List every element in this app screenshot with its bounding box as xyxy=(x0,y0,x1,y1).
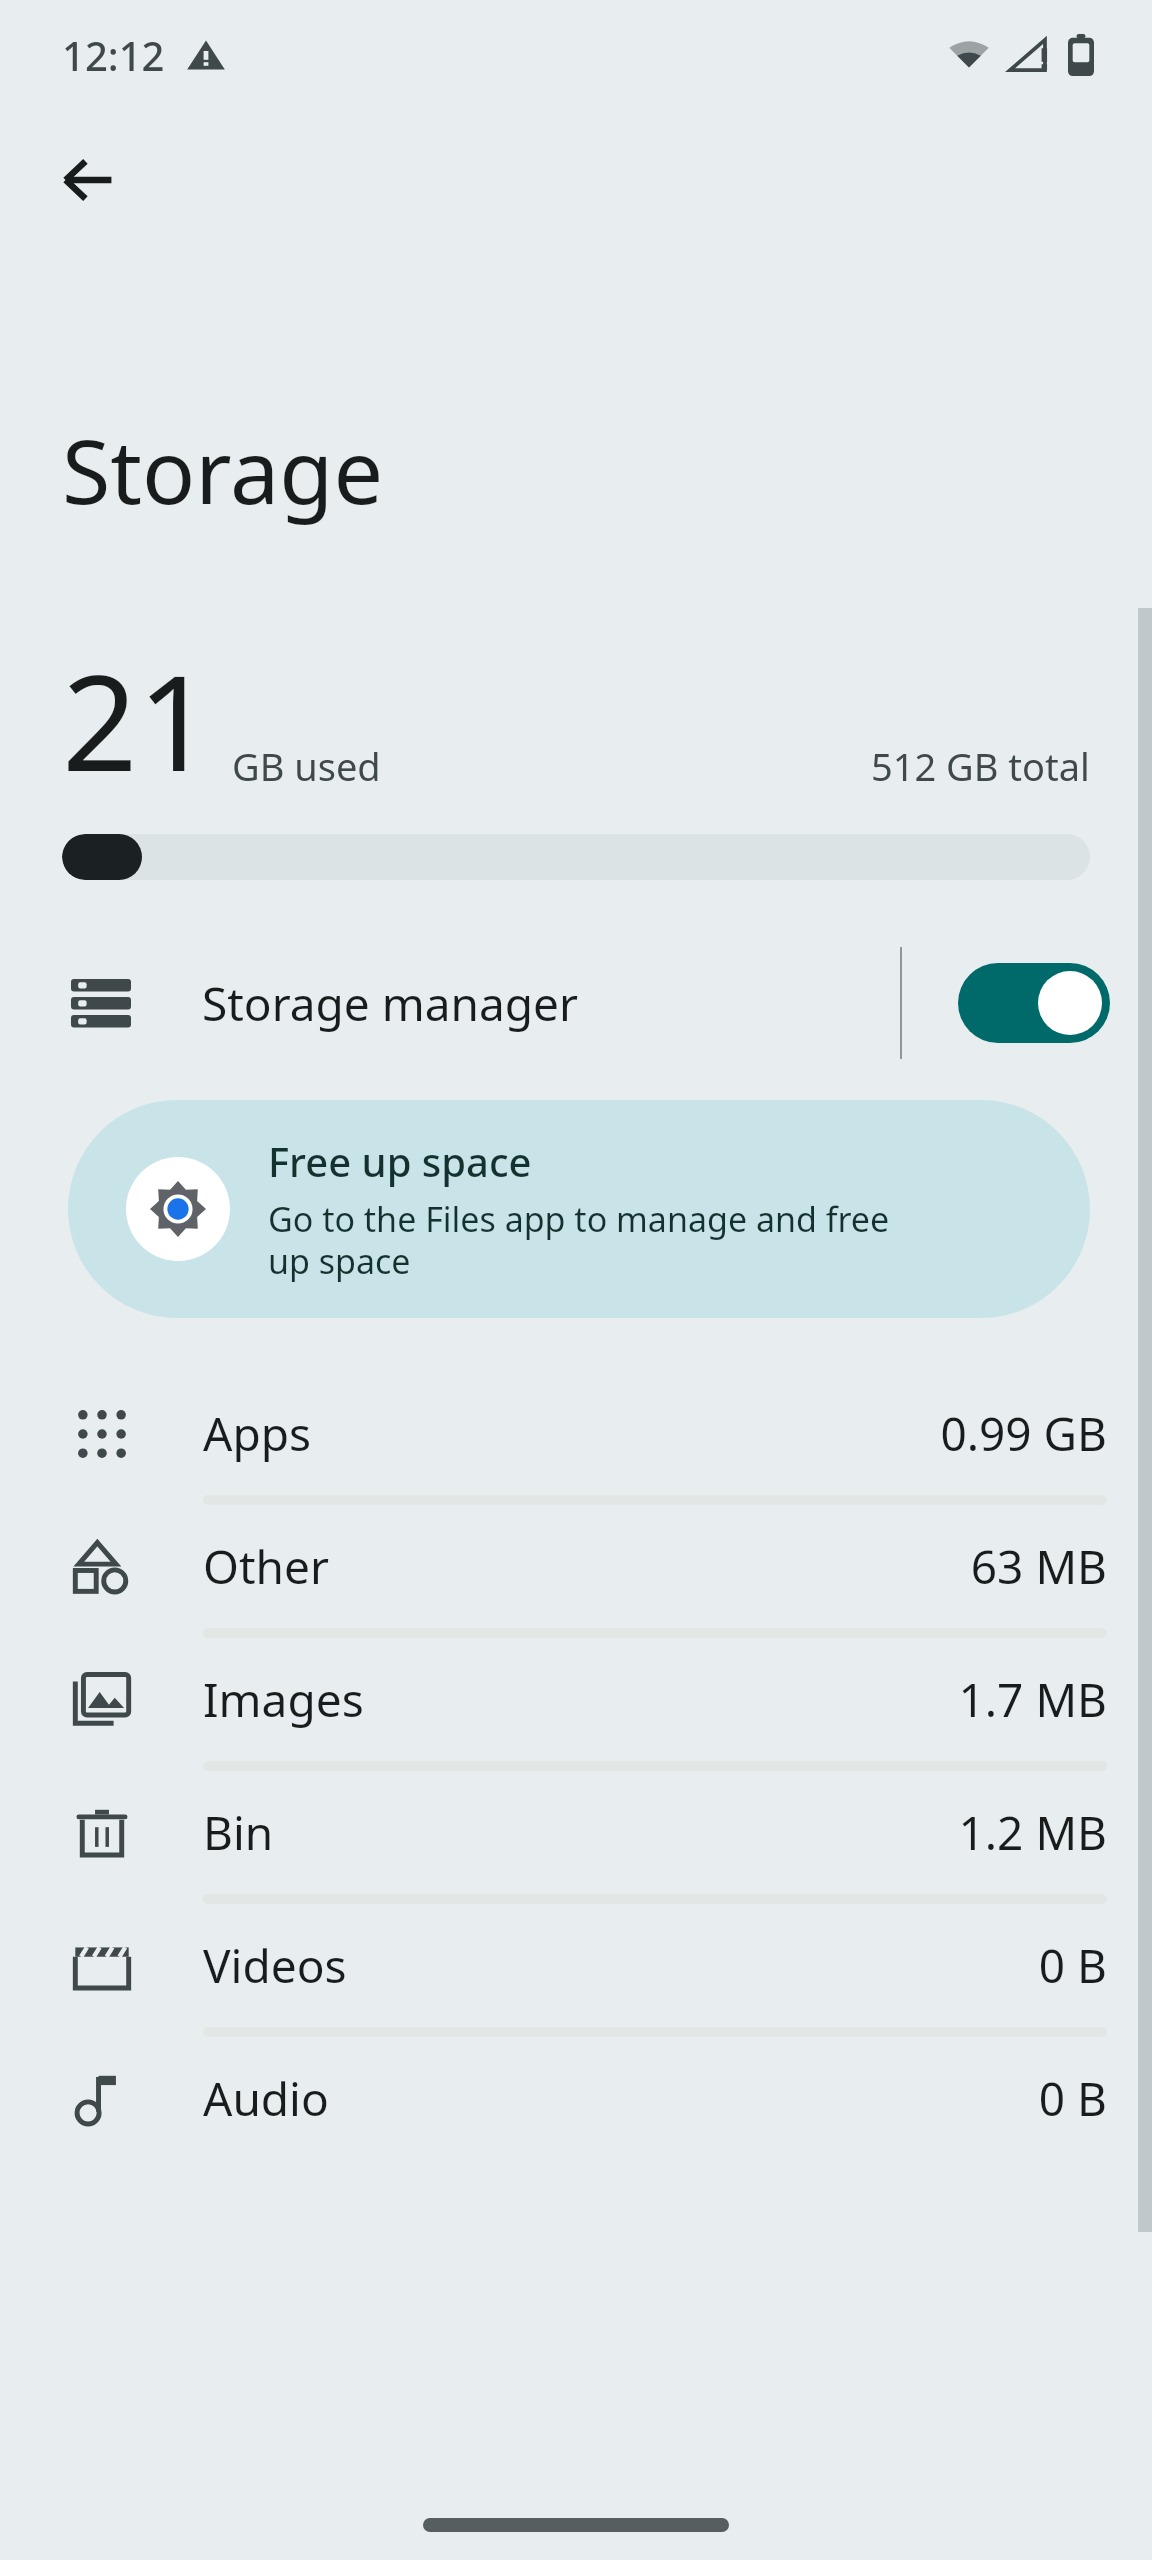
staticText: Storage manager xyxy=(202,972,579,1035)
button[interactable]: Bin xyxy=(0,1771,1152,1894)
staticText: 12:12 xyxy=(62,28,165,82)
staticText: Go to the Files app to manage and free u… xyxy=(268,1196,928,1284)
staticText: GB used xyxy=(232,740,381,792)
staticText: Bin xyxy=(203,1801,274,1864)
staticText: 0 B xyxy=(1038,1934,1107,1997)
staticText: 1.7 MB xyxy=(958,1668,1107,1731)
staticText: 512 GB total xyxy=(871,740,1090,792)
staticText: Images xyxy=(203,1668,364,1731)
button[interactable]: Storage manager xyxy=(0,936,1152,1070)
staticText: Audio xyxy=(203,2067,329,2130)
button[interactable]: Free up space xyxy=(68,1100,1090,1318)
staticText: 63 MB xyxy=(970,1535,1107,1598)
button[interactable]: Videos xyxy=(0,1904,1152,2027)
staticText: Free up space xyxy=(268,1134,532,1188)
staticText: Storage xyxy=(62,410,384,530)
button[interactable]: Other xyxy=(0,1505,1152,1628)
staticText: 0.99 GB xyxy=(940,1402,1107,1465)
staticText: Videos xyxy=(203,1934,347,1997)
staticText: Apps xyxy=(203,1402,312,1465)
staticText: 1.2 MB xyxy=(958,1801,1107,1864)
button[interactable]: Apps xyxy=(0,1372,1152,1495)
button[interactable]: Images xyxy=(0,1638,1152,1761)
button[interactable]: Back xyxy=(36,128,140,232)
staticText: 0 B xyxy=(1038,2067,1107,2130)
button[interactable]: Storage manager toggle xyxy=(958,963,1110,1043)
staticText: 21 xyxy=(62,630,214,810)
button[interactable]: Audio xyxy=(0,2037,1152,2160)
staticText: Other xyxy=(203,1535,329,1598)
